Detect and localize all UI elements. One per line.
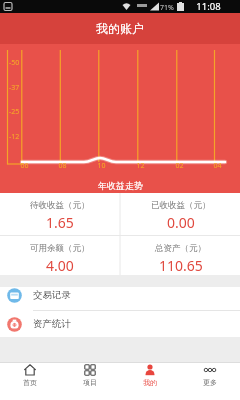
staticText: -50 <box>9 58 20 68</box>
staticText: -37 <box>9 83 20 93</box>
staticText: 更多 <box>203 378 217 387</box>
staticText: 交易记录 <box>33 289 71 301</box>
staticText: 04 <box>213 161 222 171</box>
staticText: 待收收益（元） <box>30 200 90 211</box>
staticText: 总资产（元） <box>155 243 206 254</box>
staticText: 06 <box>20 161 29 171</box>
staticText: -25 <box>9 107 20 117</box>
staticText: 11:08 <box>196 0 221 13</box>
staticText: 年收益走势 <box>98 180 143 191</box>
staticText: 可用余额（元） <box>30 243 90 254</box>
staticText: 110.65 <box>159 256 203 275</box>
button[interactable]: 可用余额（元） <box>0 236 120 275</box>
staticText: 1.65 <box>46 213 74 232</box>
staticText: 71% <box>160 3 174 13</box>
staticText: 4.00 <box>46 256 74 275</box>
staticText: 08 <box>58 161 67 171</box>
staticText: 12 <box>136 161 145 171</box>
staticText: 我的 <box>143 378 157 387</box>
staticText: 已收收益（元） <box>151 200 211 211</box>
button[interactable]: 总资产（元） <box>121 236 240 275</box>
staticText: 资产统计 <box>33 318 71 330</box>
staticText: 02 <box>175 161 184 171</box>
staticText: 首页 <box>23 378 37 387</box>
button[interactable]: 我的 <box>120 363 180 400</box>
button[interactable]: 项目 <box>60 363 120 400</box>
staticText: 0.00 <box>167 213 195 232</box>
staticText: -12 <box>9 132 20 142</box>
button[interactable]: 首页 <box>0 363 60 400</box>
staticText: 我的账户 <box>96 21 144 36</box>
staticText: 10 <box>97 161 106 171</box>
button[interactable]: 待收收益（元） <box>0 193 120 236</box>
staticText: 项目 <box>83 378 97 387</box>
button[interactable]: 更多 <box>180 363 240 400</box>
button[interactable]: 已收收益（元） <box>121 193 240 236</box>
button[interactable]: 交易记录 <box>0 287 240 310</box>
button[interactable]: 资产统计 <box>0 311 240 337</box>
